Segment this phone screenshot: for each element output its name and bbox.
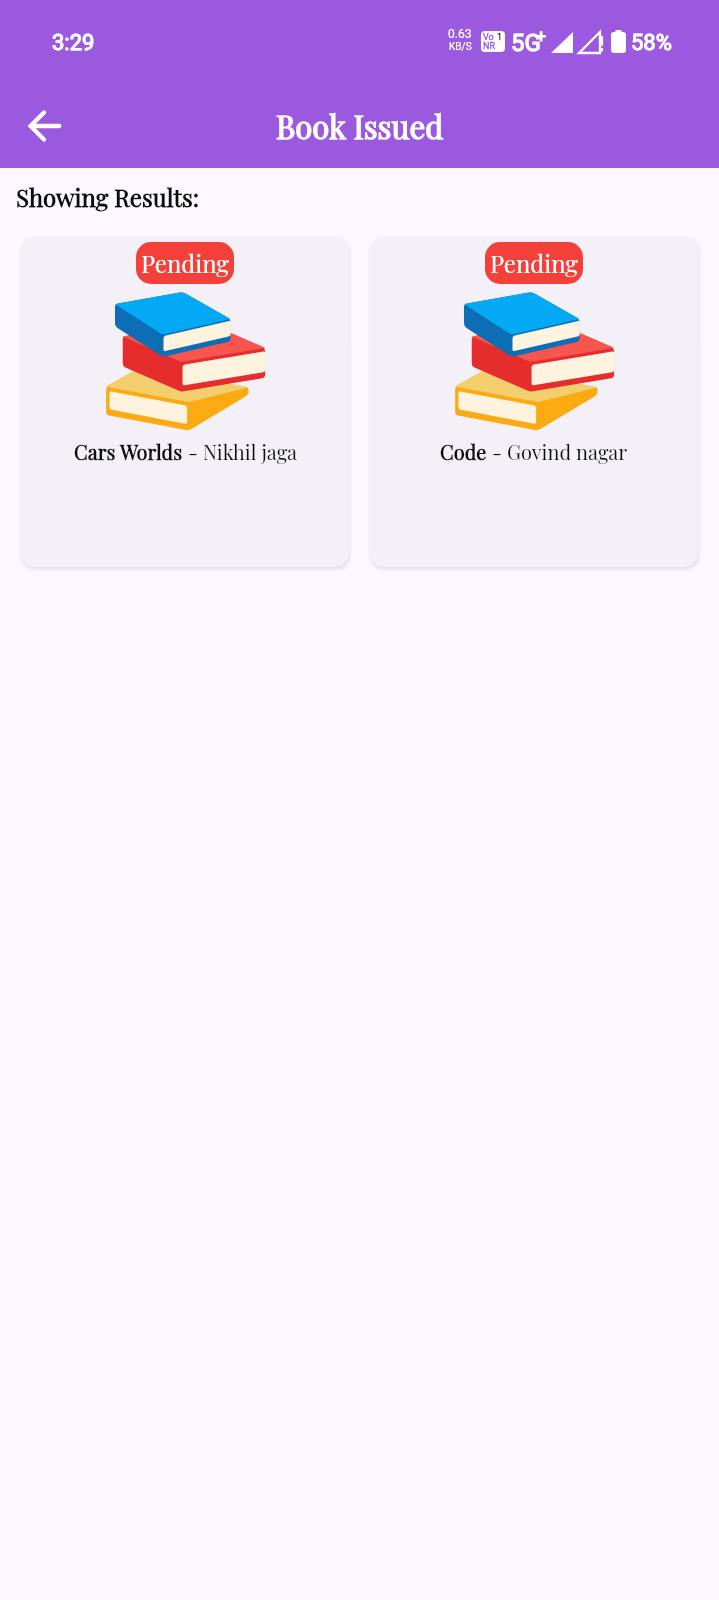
staticText: 1	[497, 32, 503, 43]
staticText: - Govind nagar	[487, 438, 628, 465]
staticText: NR	[483, 41, 495, 52]
staticText: 5G	[511, 29, 541, 57]
staticText: 3:29	[52, 30, 95, 56]
staticText: 0.63	[448, 27, 472, 41]
staticText: 58%	[631, 30, 672, 56]
staticText: Book Issued	[276, 105, 444, 146]
button[interactable]: Pending	[21, 237, 349, 567]
staticText: Vo	[483, 32, 494, 43]
staticText: Showing Results:	[16, 181, 200, 213]
staticText: +	[536, 26, 547, 47]
staticText: Code	[440, 438, 487, 465]
staticText: KB/S	[449, 41, 472, 53]
staticText: Pending	[490, 247, 578, 279]
staticText: Cars Worlds	[74, 438, 183, 465]
button[interactable]: Pending	[370, 237, 698, 567]
staticText: Pending	[141, 247, 229, 279]
staticText: - Nikhil jaga	[183, 438, 297, 465]
button[interactable]: Back	[18, 100, 70, 152]
